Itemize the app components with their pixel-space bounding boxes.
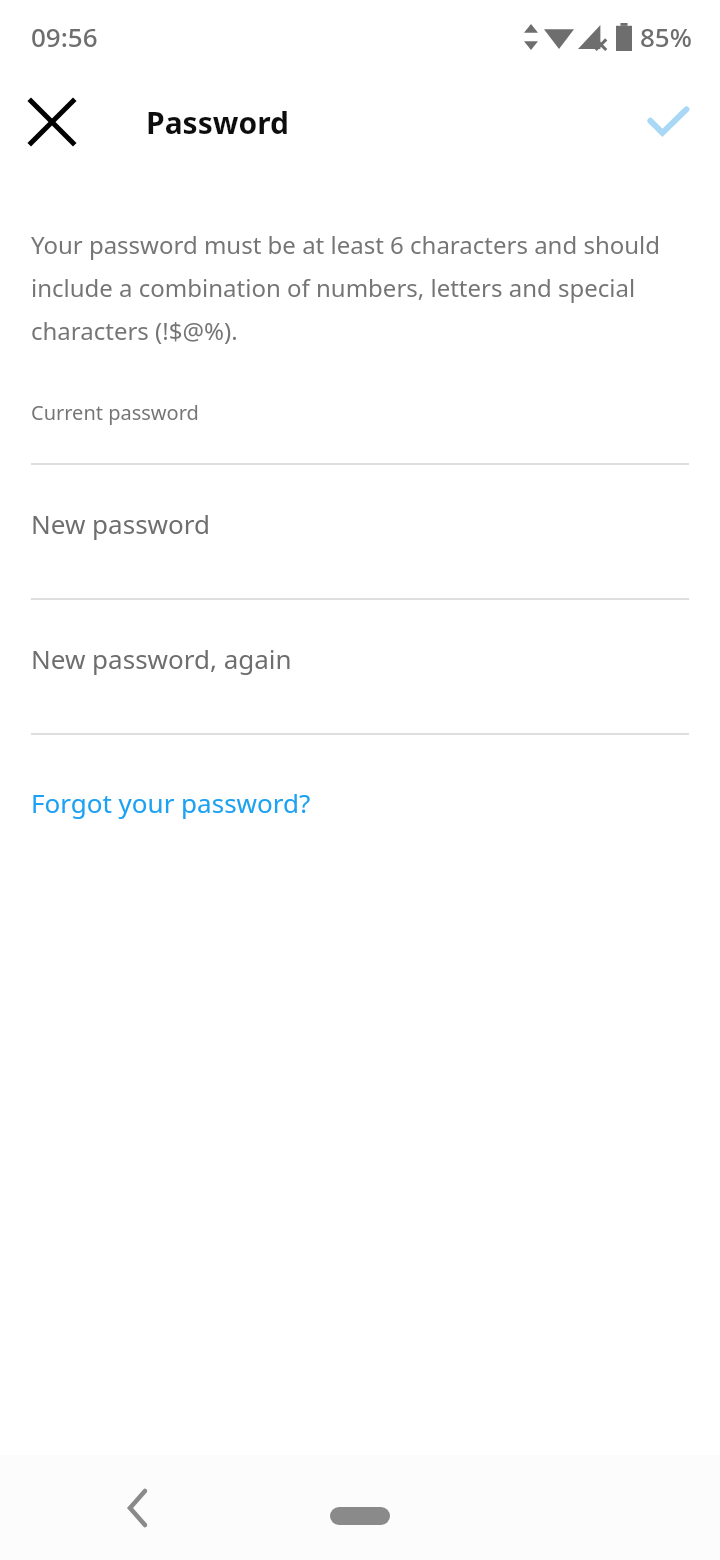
button[interactable]: Home — [330, 1507, 390, 1525]
staticText: Forgot your password? — [31, 785, 311, 820]
staticText: Your password must be at least 6 charact… — [31, 228, 680, 347]
button[interactable]: Close — [16, 86, 88, 158]
button[interactable]: Save — [632, 86, 704, 158]
staticText: Password — [146, 102, 289, 143]
staticText: New password — [31, 506, 210, 541]
button[interactable]: Current password — [0, 391, 720, 465]
button[interactable]: New password, again — [0, 600, 720, 735]
button[interactable]: Back — [100, 1470, 176, 1546]
button[interactable]: New password — [0, 465, 720, 600]
staticText: Current password — [31, 399, 199, 426]
staticText: New password, again — [31, 641, 292, 676]
staticText: 09:56 — [31, 19, 98, 54]
button[interactable]: Forgot your password? — [31, 785, 311, 820]
staticText: 85% — [640, 19, 692, 54]
